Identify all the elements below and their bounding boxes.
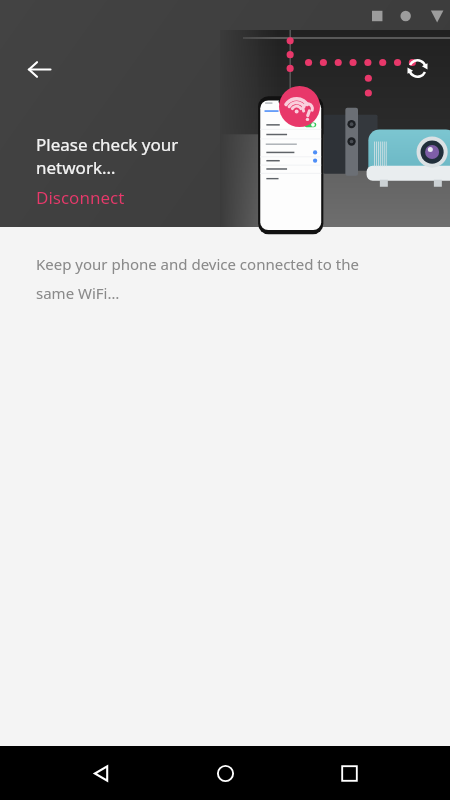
button[interactable]: Recents [325, 749, 373, 797]
button[interactable]: Back [77, 749, 125, 797]
staticText: Disconnect [36, 186, 125, 209]
staticText: Please check your network… [36, 133, 179, 179]
button[interactable]: Home [201, 749, 249, 797]
button[interactable]: Disconnect [36, 186, 125, 209]
button[interactable]: Refresh [395, 46, 439, 90]
staticText: Keep your phone and device connected to … [36, 254, 391, 303]
button[interactable]: Back [17, 47, 61, 91]
